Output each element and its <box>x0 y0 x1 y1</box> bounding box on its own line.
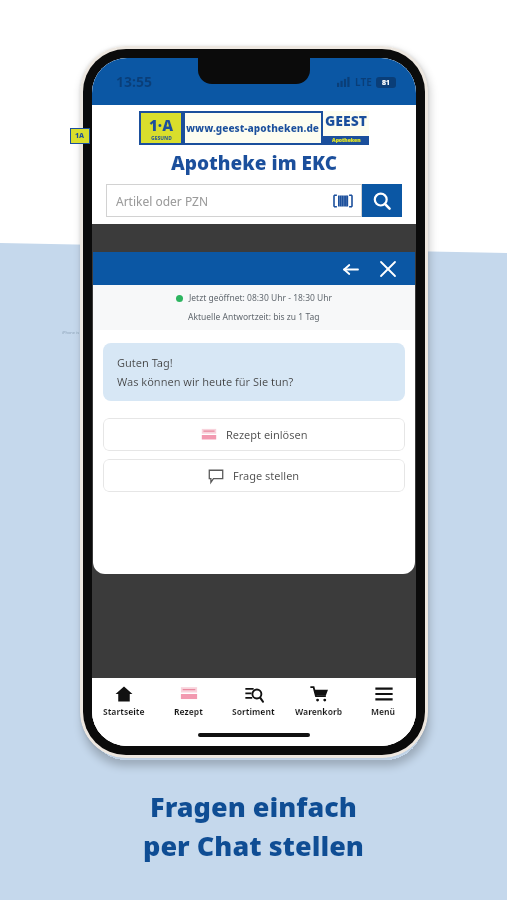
staticText: Menü <box>371 706 396 718</box>
button[interactable]: Warenkorb <box>286 678 351 724</box>
staticText: Jetzt geöffnet: 08:30 Uhr - 18:30 Uhr <box>189 292 333 304</box>
button[interactable]: Rezept <box>156 678 221 724</box>
button[interactable]: Frage stellen <box>103 459 405 492</box>
staticText: www.geest-apotheken.de <box>186 121 320 135</box>
button[interactable]: Zurück <box>337 256 363 282</box>
button[interactable]: Barcode scannen <box>334 192 352 210</box>
button[interactable]: Rezept einlösen <box>103 418 405 451</box>
staticText: Was können wir heute für Sie tun? <box>117 374 294 389</box>
button[interactable]: Startseite <box>92 678 156 724</box>
staticText: Fragen einfach <box>150 788 357 825</box>
staticText: Apotheke im EKC <box>106 150 402 176</box>
staticText: Rezept einlösen <box>226 427 308 442</box>
staticText: 13:55 <box>116 72 152 91</box>
staticText: Startseite <box>103 706 145 718</box>
staticText: Sortiment <box>232 706 275 718</box>
staticText: Rezept <box>174 706 203 718</box>
button[interactable]: Schließen <box>375 256 401 282</box>
button[interactable]: Menü <box>351 678 416 724</box>
staticText: GEEST <box>325 111 368 130</box>
staticText: per Chat stellen <box>143 827 364 864</box>
staticText: GESUND <box>151 135 172 142</box>
staticText: 1·A <box>149 115 174 135</box>
staticText: Artikel oder PZN <box>116 193 209 209</box>
staticText: Aktuelle Antwortzeit: bis zu 1 Tag <box>188 311 320 323</box>
staticText: Apotheken <box>332 137 361 144</box>
staticText: iPhone is a trademark of Apple Inc. <box>62 330 128 335</box>
staticText: Guten Tag! <box>117 355 173 370</box>
staticText: 81 <box>382 78 391 88</box>
button[interactable]: Artikel oder PZN <box>106 184 362 217</box>
staticText: Warenkorb <box>295 706 343 718</box>
staticText: 1A <box>75 131 85 141</box>
button[interactable]: Sortiment <box>221 678 286 724</box>
staticText: LTE <box>355 75 372 89</box>
staticText: Frage stellen <box>233 468 300 483</box>
button[interactable]: Suchen <box>362 184 402 217</box>
